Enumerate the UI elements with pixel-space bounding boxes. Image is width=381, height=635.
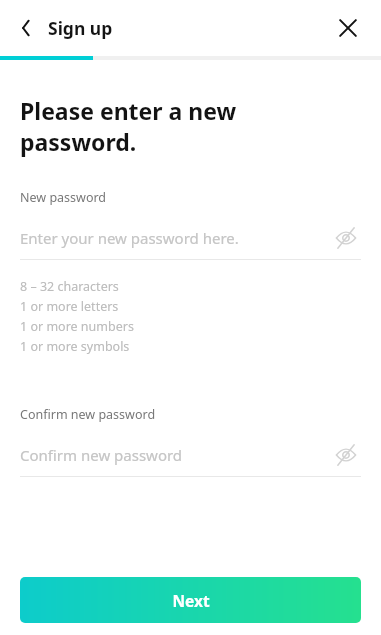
staticText: 1 or more numbers bbox=[20, 318, 134, 338]
button[interactable]: Close bbox=[331, 11, 365, 45]
button[interactable]: Show password bbox=[331, 440, 361, 470]
staticText: 1 or more symbols bbox=[20, 338, 130, 358]
staticText: Next bbox=[172, 590, 210, 611]
staticText: Confirm new password bbox=[20, 445, 331, 465]
staticText: 1 or more letters bbox=[20, 298, 119, 318]
staticText: Sign up bbox=[48, 16, 113, 40]
staticText: 8 – 32 characters bbox=[20, 278, 119, 298]
staticText: Confirm new password bbox=[20, 406, 156, 423]
staticText: Enter your new password here. bbox=[20, 228, 331, 248]
button[interactable]: Show password bbox=[331, 223, 361, 253]
button[interactable]: Next bbox=[20, 577, 361, 623]
staticText: New password bbox=[20, 189, 107, 206]
button[interactable]: Back bbox=[10, 11, 44, 45]
staticText: Please enter a new password. bbox=[20, 95, 237, 158]
